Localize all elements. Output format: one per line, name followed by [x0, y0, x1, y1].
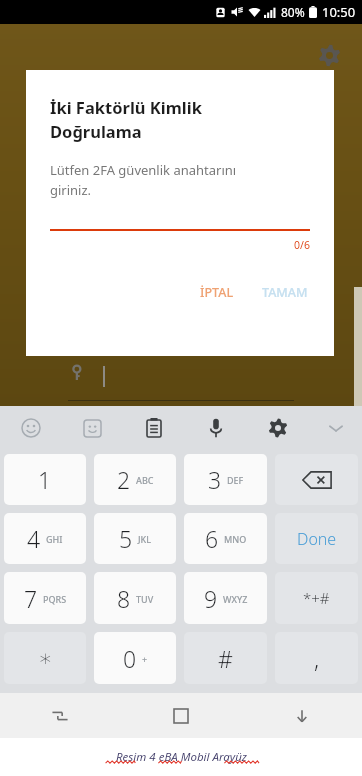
button[interactable]: TAMAM: [252, 276, 318, 309]
staticText: İPTAL: [200, 284, 234, 301]
button[interactable]: #: [184, 632, 267, 684]
staticText: MNO: [224, 533, 247, 545]
staticText: *+#: [303, 588, 330, 608]
staticText: DEF: [227, 474, 244, 486]
staticText: Done: [297, 528, 337, 550]
button[interactable]: 2: [94, 454, 176, 505]
staticText: ∗: [38, 645, 53, 672]
staticText: 5: [119, 523, 133, 554]
button[interactable]: Hide keyboard: [241, 693, 362, 738]
staticText: TAMAM: [262, 284, 308, 301]
staticText: Lütfen 2FA güvenlik anahtarını giriniz.: [50, 161, 237, 199]
button[interactable]: 3: [184, 454, 267, 505]
staticText: TUV: [136, 593, 154, 605]
button[interactable]: *+#: [275, 572, 358, 624]
staticText: 8: [117, 583, 131, 614]
staticText: 9: [204, 583, 218, 614]
button[interactable]: 1: [4, 454, 86, 505]
button[interactable]: Home: [120, 693, 241, 738]
button[interactable]: 9: [184, 572, 267, 624]
staticText: 80%: [281, 4, 305, 20]
staticText: 0/6: [294, 238, 310, 252]
staticText: 2: [117, 464, 131, 495]
staticText: 10:50: [322, 3, 356, 21]
staticText: Resim 4 eBA Mobil Arayüz: [116, 749, 247, 765]
staticText: ,: [314, 643, 320, 674]
staticText: GHI: [46, 533, 63, 545]
button[interactable]: Clipboard: [123, 406, 185, 450]
button[interactable]: Recent apps: [0, 693, 120, 738]
staticText: 6: [205, 523, 219, 554]
staticText: 4: [27, 523, 41, 554]
button[interactable]: Voice input: [185, 406, 247, 450]
staticText: WXYZ: [223, 593, 248, 605]
button[interactable]: Stickers: [61, 406, 123, 450]
button[interactable]: Settings: [312, 38, 346, 72]
staticText: +: [142, 653, 148, 665]
staticText: PQRS: [43, 593, 67, 605]
button[interactable]: 4: [4, 513, 86, 564]
button[interactable]: ,: [275, 632, 358, 684]
button[interactable]: Backspace: [275, 454, 358, 505]
staticText: JKL: [138, 533, 152, 545]
button[interactable]: More: [309, 406, 362, 450]
staticText: İki Faktörlü Kimlik Doğrulama: [50, 96, 202, 143]
button[interactable]: İPTAL: [190, 276, 244, 309]
button[interactable]: 8: [94, 572, 176, 624]
button[interactable]: 5: [94, 513, 176, 564]
staticText: #: [218, 643, 233, 674]
button[interactable]: ∗: [4, 632, 86, 684]
staticText: 7: [24, 583, 38, 614]
staticText: 0: [123, 643, 137, 674]
staticText: ABC: [136, 474, 154, 486]
button[interactable]: 6: [184, 513, 267, 564]
staticText: 1: [38, 464, 52, 495]
button[interactable]: 7: [4, 572, 86, 624]
staticText: 3: [208, 464, 222, 495]
button[interactable]: Keyboard settings: [247, 406, 309, 450]
button[interactable]: Emoji: [0, 406, 61, 450]
button[interactable]: 0: [94, 632, 176, 684]
button[interactable]: Done: [275, 513, 358, 564]
